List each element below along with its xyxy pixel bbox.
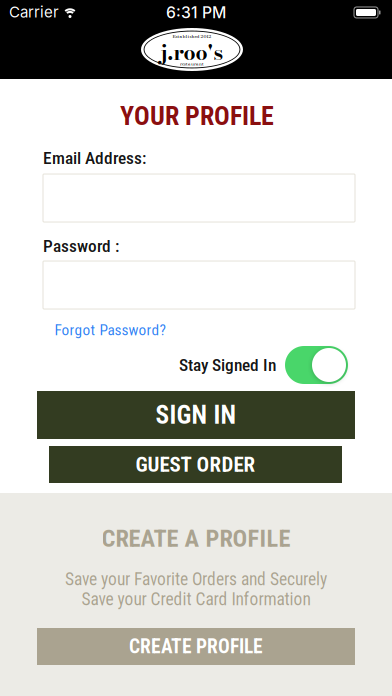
staticText: Email Address: <box>43 148 146 168</box>
staticText: Stay Signed In <box>179 355 276 375</box>
staticText: Forgot Password? <box>54 321 165 339</box>
staticText: YOUR PROFILE <box>120 101 274 131</box>
staticText: SIGN IN <box>155 400 236 430</box>
staticText: GUEST ORDER <box>135 452 255 477</box>
button[interactable]: Forgot Password? <box>48 317 171 343</box>
staticText: 6:31 PM <box>166 3 226 22</box>
staticText: j.roo's <box>160 36 223 68</box>
button[interactable]: Stay Signed In <box>285 346 348 384</box>
staticText: Carrier <box>9 3 59 21</box>
button[interactable]: Password <box>43 261 355 309</box>
staticText: Password : <box>43 236 119 256</box>
staticText: CREATE PROFILE <box>129 635 263 658</box>
button[interactable]: CREATE PROFILE <box>37 628 355 665</box>
button[interactable]: GUEST ORDER <box>49 446 342 483</box>
button[interactable]: Email Address <box>43 174 355 222</box>
staticText: Established 2012 <box>172 32 211 40</box>
button[interactable]: SIGN IN <box>37 391 355 439</box>
staticText: restaurant <box>180 60 204 67</box>
staticText: CREATE A PROFILE <box>101 524 290 553</box>
staticText: Save your Favorite Orders and Securely <box>65 569 327 589</box>
staticText: Save your Credit Card Information <box>81 589 310 609</box>
